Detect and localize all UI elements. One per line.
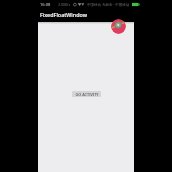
staticText: GO ACTIVITY (75, 92, 99, 97)
staticText: 3.00K/s (58, 2, 71, 7)
button[interactable]: GO ACTIVITY (72, 91, 101, 97)
button[interactable]: Floating window (111, 19, 126, 34)
staticText: 16:08 (40, 2, 51, 7)
staticText: FixedFloatWindow (40, 11, 88, 18)
staticText: 中国移动 无服务 · 中国移动 (87, 2, 130, 7)
